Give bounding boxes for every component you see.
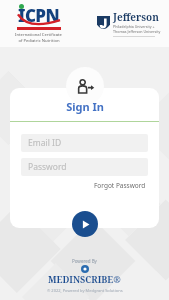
staticText: Thomas Jefferson University xyxy=(113,29,161,34)
staticText: ICPN xyxy=(18,4,60,27)
button[interactable]: Password xyxy=(21,158,148,176)
staticText: © 2022, Powered by Medgrant Solutions xyxy=(47,288,123,293)
staticText: International Certificate xyxy=(15,32,62,38)
staticText: MEDINSCRIBE® xyxy=(48,273,121,285)
button[interactable]: Forgot Password xyxy=(92,180,148,191)
staticText: Forgot Password xyxy=(94,181,146,190)
staticText: Philadelphia University + xyxy=(113,24,155,29)
staticText: Email ID xyxy=(28,137,62,149)
button[interactable]: Email ID xyxy=(21,134,148,152)
staticText: Powered By xyxy=(72,258,97,264)
staticText: of Pediatric Nutrition xyxy=(18,38,60,44)
staticText: Sign In xyxy=(66,99,104,114)
button[interactable]: Sign In xyxy=(72,211,98,237)
staticText: Jefferson xyxy=(113,10,159,24)
staticText: Password xyxy=(28,161,67,173)
